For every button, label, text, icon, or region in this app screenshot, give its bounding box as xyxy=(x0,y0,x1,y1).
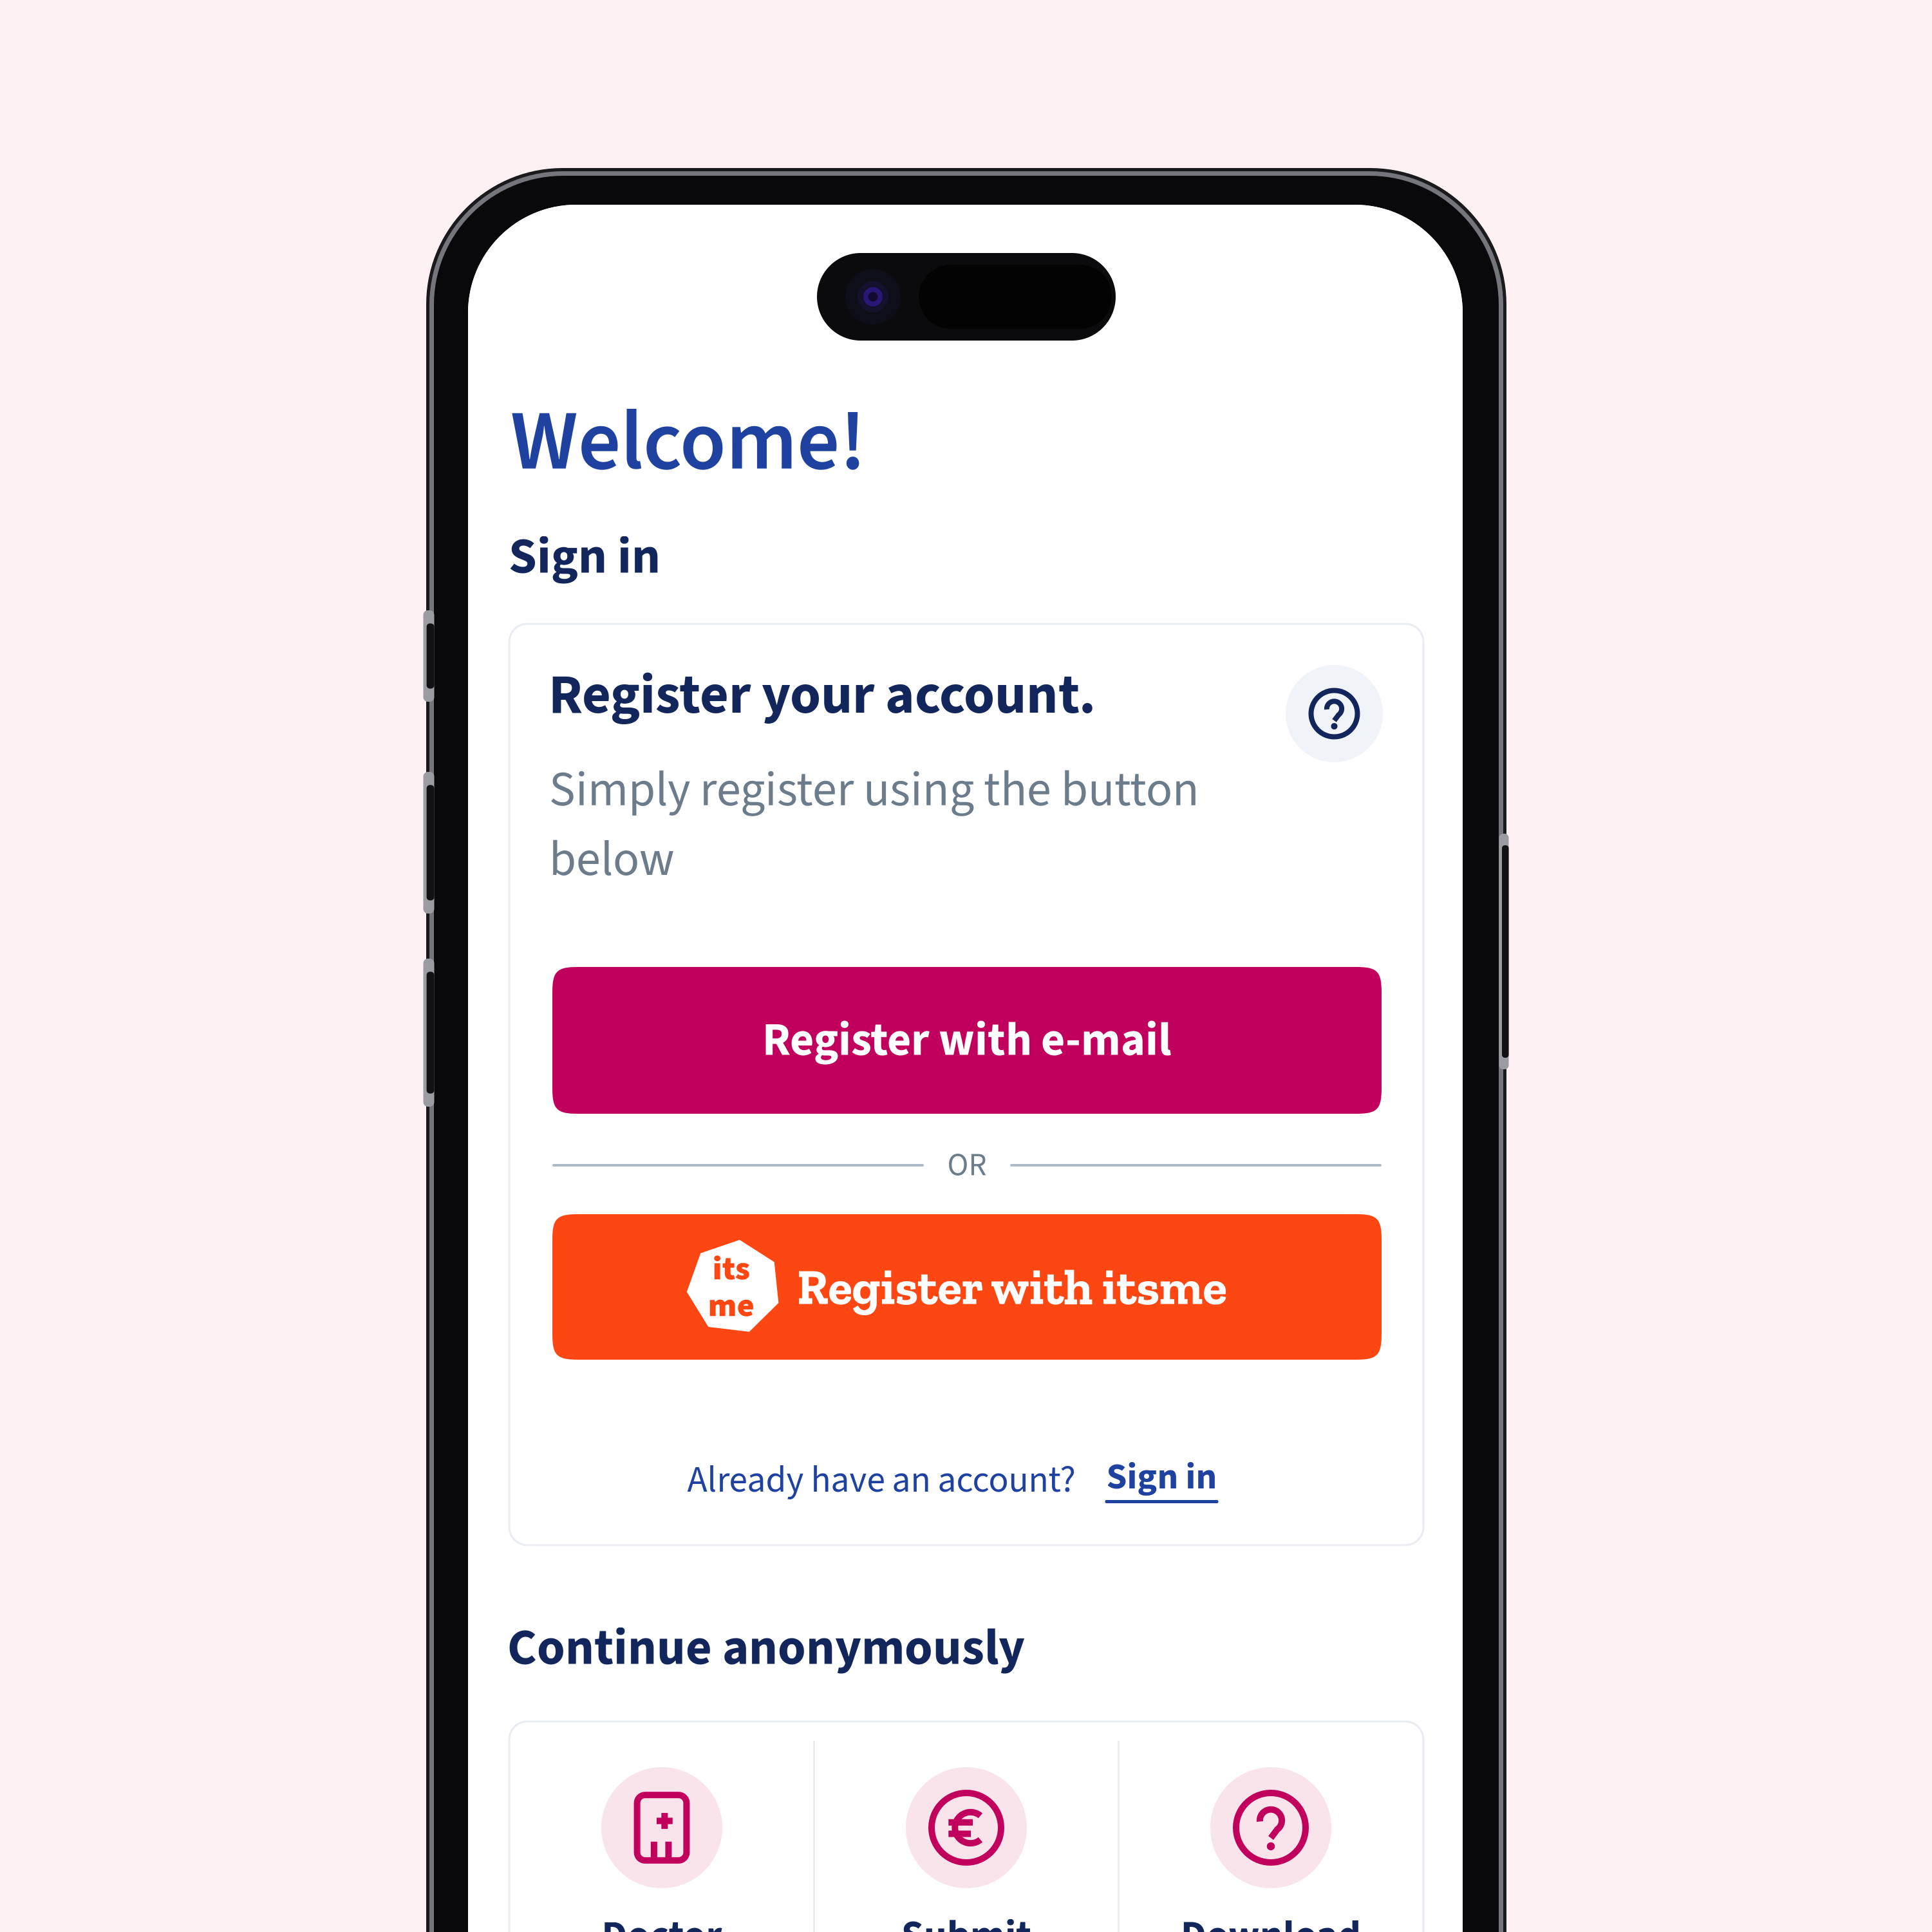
staticText: me xyxy=(708,1282,754,1329)
button[interactable]: its xyxy=(552,1214,1382,1360)
staticText: Continue anonymously xyxy=(507,1612,1025,1684)
staticText: Submit xyxy=(901,1907,1031,1932)
button[interactable]: Help xyxy=(1286,665,1383,762)
button[interactable]: Register with e-mail xyxy=(552,967,1382,1114)
staticText: Sign in xyxy=(509,521,661,593)
staticText: Welcome! xyxy=(511,382,866,502)
staticText: Already have an account? xyxy=(687,1454,1075,1506)
staticText: Register your account. xyxy=(549,656,1096,735)
staticText: Register with itsme xyxy=(797,1257,1227,1317)
staticText: Simply register using the button below xyxy=(549,755,1199,894)
staticText: Doctor xyxy=(602,1907,722,1932)
button[interactable]: Sign in xyxy=(1104,1454,1220,1506)
staticText: its xyxy=(712,1245,750,1293)
staticText: Sign in xyxy=(1106,1451,1217,1503)
button[interactable]: Submit xyxy=(815,1767,1118,1932)
staticText: Register with e-mail xyxy=(762,1007,1172,1073)
staticText: OR xyxy=(947,1143,987,1188)
button[interactable]: Download xyxy=(1120,1767,1422,1932)
staticText: Download xyxy=(1181,1907,1361,1932)
button[interactable]: Doctor xyxy=(511,1767,813,1932)
